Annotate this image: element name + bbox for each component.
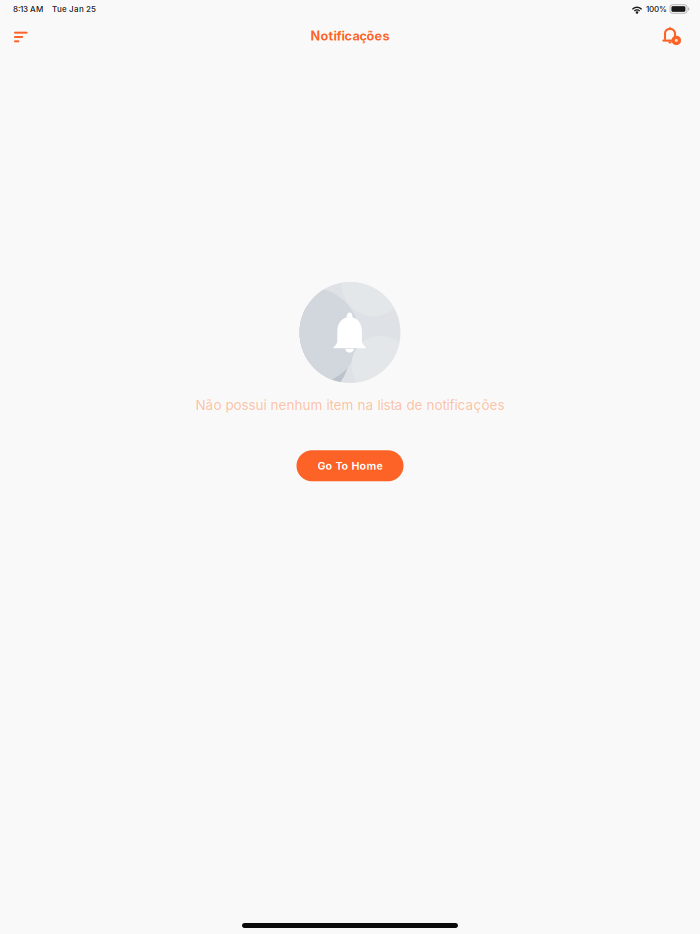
staticText: Go To Home [317, 459, 382, 472]
button[interactable]: Notifications [645, 18, 681, 54]
staticText: 8:13 AM [13, 4, 43, 14]
button[interactable]: Go To Home [296, 450, 403, 481]
button[interactable]: Menu [14, 19, 50, 53]
staticText: Notificações [310, 28, 389, 44]
staticText: 100% [646, 4, 667, 14]
staticText: Não possui nenhum item na lista de notif… [195, 397, 504, 413]
staticText: Tue Jan 25 [52, 4, 96, 14]
